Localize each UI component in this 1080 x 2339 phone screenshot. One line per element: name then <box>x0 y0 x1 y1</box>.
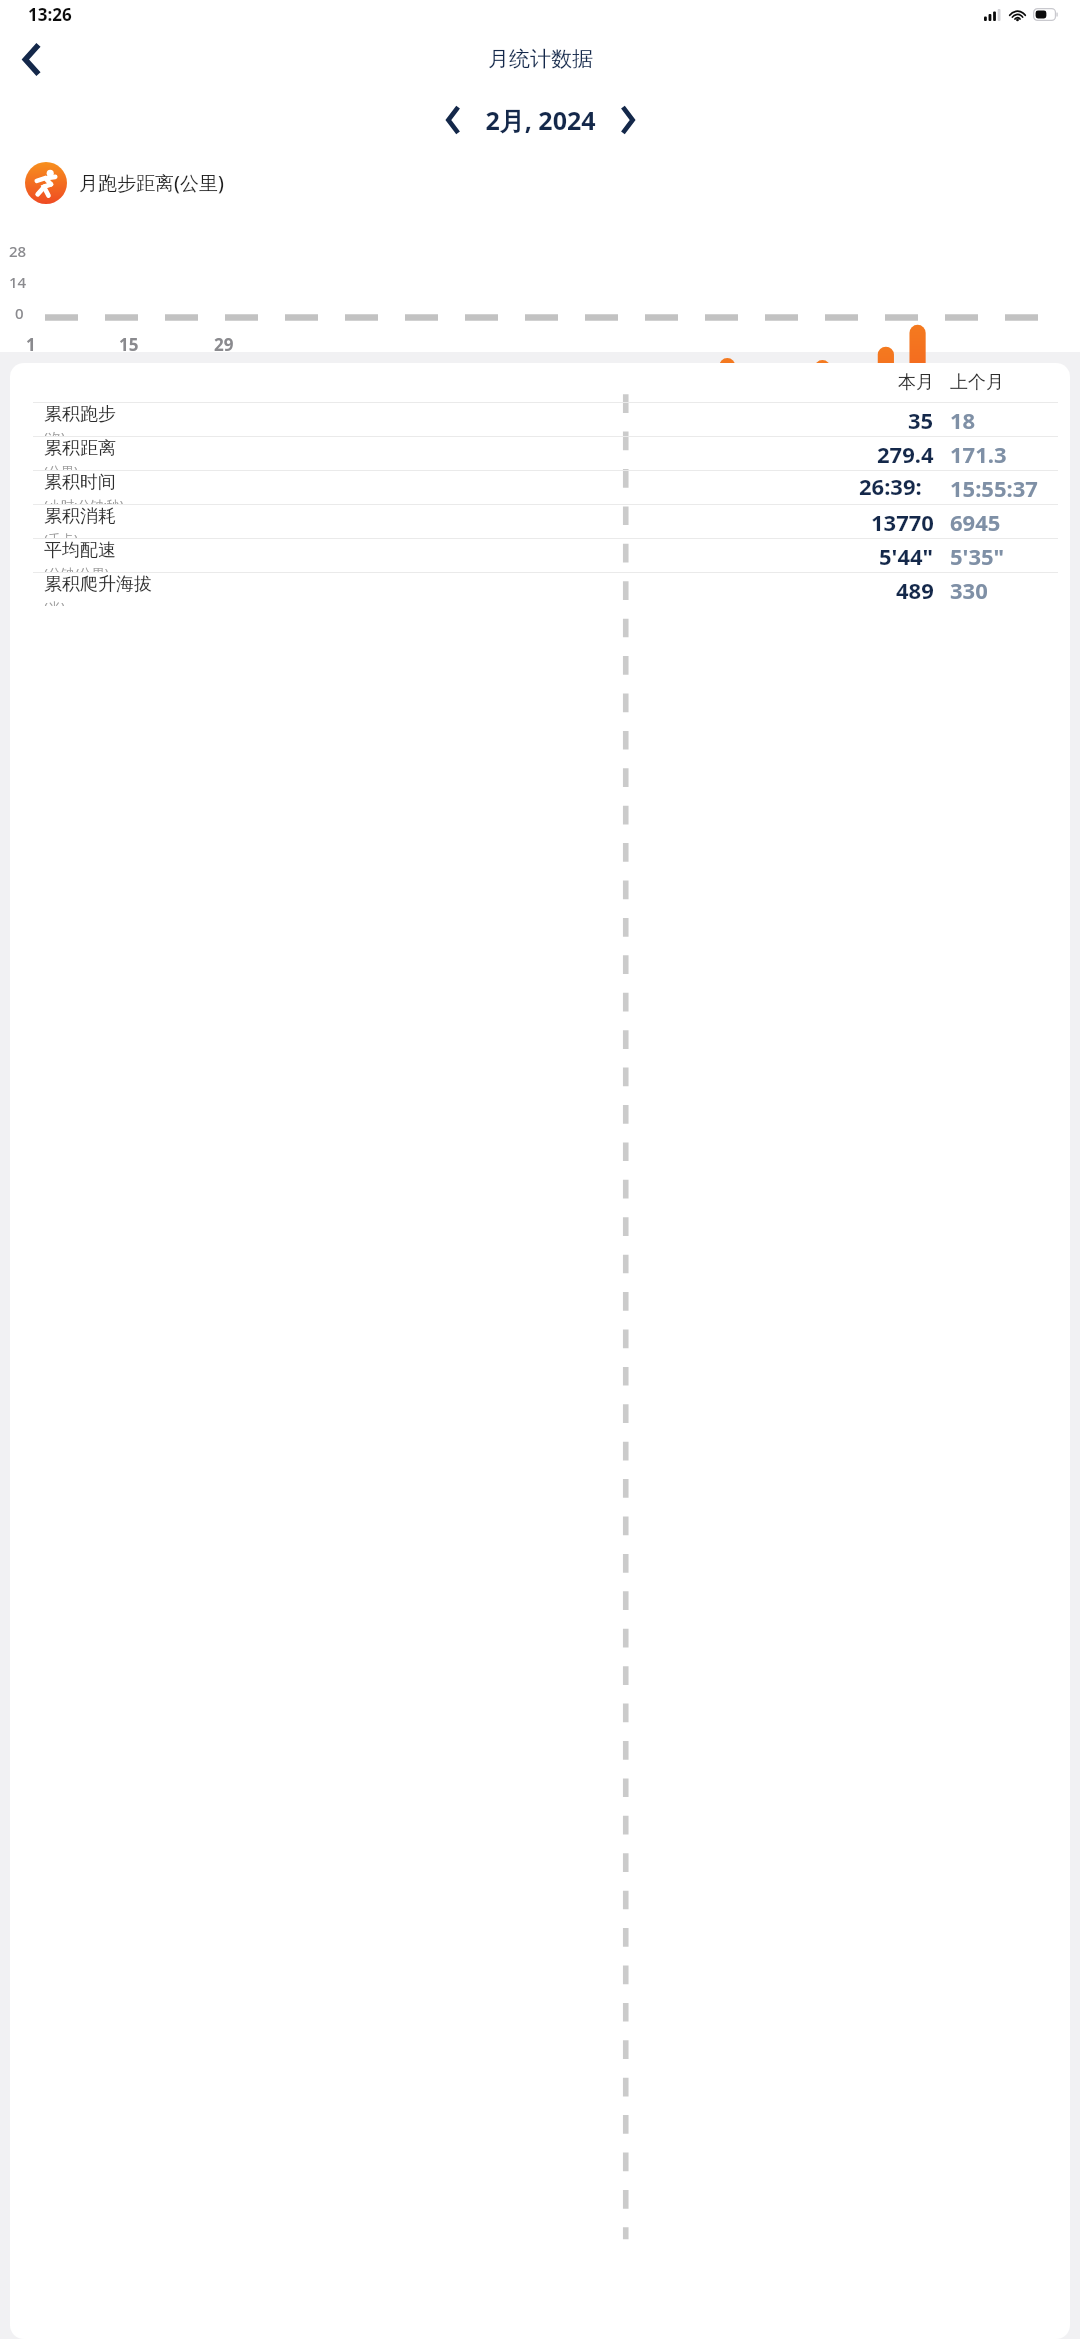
staticText: (公里) <box>44 462 78 470</box>
staticText: 月统计数据 <box>488 46 593 72</box>
staticText: 330 <box>950 575 988 605</box>
staticText: (次) <box>44 428 65 436</box>
button[interactable]: 累积时间 <box>10 471 1070 504</box>
button[interactable]: Back <box>4 32 58 86</box>
staticText: 18 <box>950 405 976 435</box>
staticText: 0 <box>15 303 24 323</box>
staticText: 累积距离 <box>44 437 116 460</box>
staticText: 月跑步距离(公里) <box>79 170 224 196</box>
staticText: (米) <box>44 598 65 606</box>
staticText: 累积爬升海拔 <box>44 573 152 596</box>
staticText: 279.4 <box>877 439 934 469</box>
staticText: 15:55:37 <box>950 473 1038 503</box>
staticText: 1 <box>26 333 36 356</box>
staticText: 14 <box>9 272 27 292</box>
button[interactable]: Next month <box>604 96 652 144</box>
staticText: 累积消耗 <box>44 505 116 528</box>
staticText: 平均配速 <box>44 539 116 562</box>
staticText: 本月 <box>898 371 934 394</box>
staticText: 13770 <box>871 507 934 537</box>
staticText: 5'44" <box>879 541 934 571</box>
staticText: 28 <box>9 241 27 261</box>
staticText: (小时:分钟:秒) <box>44 496 124 504</box>
staticText: (千卡) <box>44 530 78 538</box>
button[interactable]: 累积爬升海拔 <box>10 573 1070 606</box>
staticText: 上个月 <box>950 371 1004 394</box>
button[interactable]: 累积距离 <box>10 437 1070 470</box>
button[interactable]: Previous month <box>428 96 476 144</box>
staticText: (分钟/公里) <box>44 564 109 572</box>
staticText: 累积时间 <box>44 471 116 494</box>
staticText: 35 <box>908 405 934 435</box>
staticText: 5'35" <box>950 541 1005 571</box>
button[interactable]: 累积消耗 <box>10 505 1070 538</box>
staticText: 171.3 <box>950 439 1007 469</box>
button[interactable]: 平均配速 <box>10 539 1070 572</box>
staticText: 15 <box>119 333 139 356</box>
staticText: 13:26 <box>28 3 72 26</box>
staticText: 累积跑步 <box>44 403 116 426</box>
staticText: 489 <box>896 575 934 605</box>
button[interactable]: 累积跑步 <box>10 403 1070 436</box>
staticText: 29 <box>214 333 234 356</box>
staticText: 26:39:49 <box>859 471 934 504</box>
staticText: 6945 <box>950 507 1001 537</box>
button[interactable]: 月跑步距离(公里) <box>0 152 1080 214</box>
staticText: 2月, 2024 <box>485 103 596 137</box>
